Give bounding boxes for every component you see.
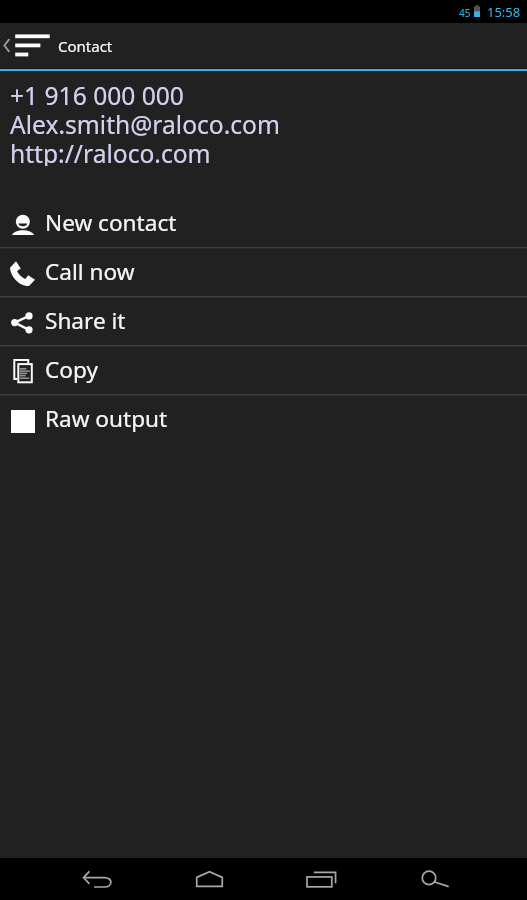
staticText: Copy [45, 354, 98, 385]
button[interactable]: Call now [0, 249, 527, 298]
staticText: Raw output [45, 403, 168, 434]
button[interactable]: Recent apps [265, 858, 378, 900]
button[interactable]: Alex.smith@raloco.com [10, 108, 527, 137]
staticText: Alex.smith@raloco.com [10, 108, 280, 137]
button[interactable]: New contact [0, 200, 527, 249]
staticText: +1 916 000 000 [10, 79, 184, 108]
staticText: Call now [45, 256, 135, 287]
staticText: 15:58 [487, 3, 521, 21]
button[interactable]: Home [153, 858, 265, 900]
staticText: New contact [45, 207, 177, 238]
staticText: 45 [459, 6, 471, 20]
staticText: Contact [58, 36, 113, 56]
staticText: http://raloco.com [10, 137, 211, 166]
button[interactable]: http://raloco.com [10, 137, 527, 166]
button[interactable]: Search [378, 858, 491, 900]
button[interactable]: Raw output [0, 396, 527, 445]
button[interactable]: Back [41, 858, 153, 900]
staticText: Share it [45, 305, 126, 336]
button[interactable]: Share it [0, 298, 527, 347]
button[interactable]: +1 916 000 000 [10, 79, 527, 108]
button[interactable]: Navigate up [0, 23, 56, 68]
button[interactable]: Copy [0, 347, 527, 396]
